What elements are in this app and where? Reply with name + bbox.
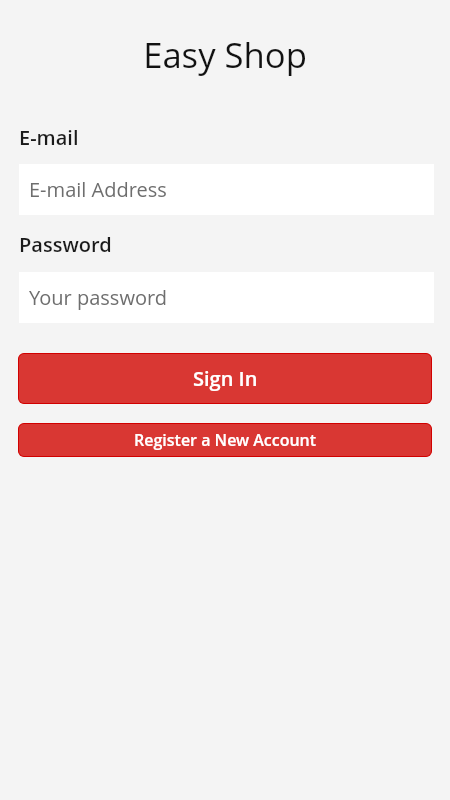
staticText: Sign In <box>193 365 258 392</box>
button[interactable]: Your password <box>19 272 434 323</box>
staticText: E-mail Address <box>29 176 167 203</box>
staticText: Easy Shop <box>0 31 450 78</box>
staticText: E-mail <box>19 124 79 151</box>
button[interactable]: Sign In <box>18 353 432 404</box>
staticText: Password <box>19 231 112 258</box>
staticText: Your password <box>29 284 168 311</box>
button[interactable]: Register a New Account <box>18 423 432 457</box>
staticText: Register a New Account <box>134 429 317 451</box>
button[interactable]: E-mail Address <box>19 164 434 215</box>
